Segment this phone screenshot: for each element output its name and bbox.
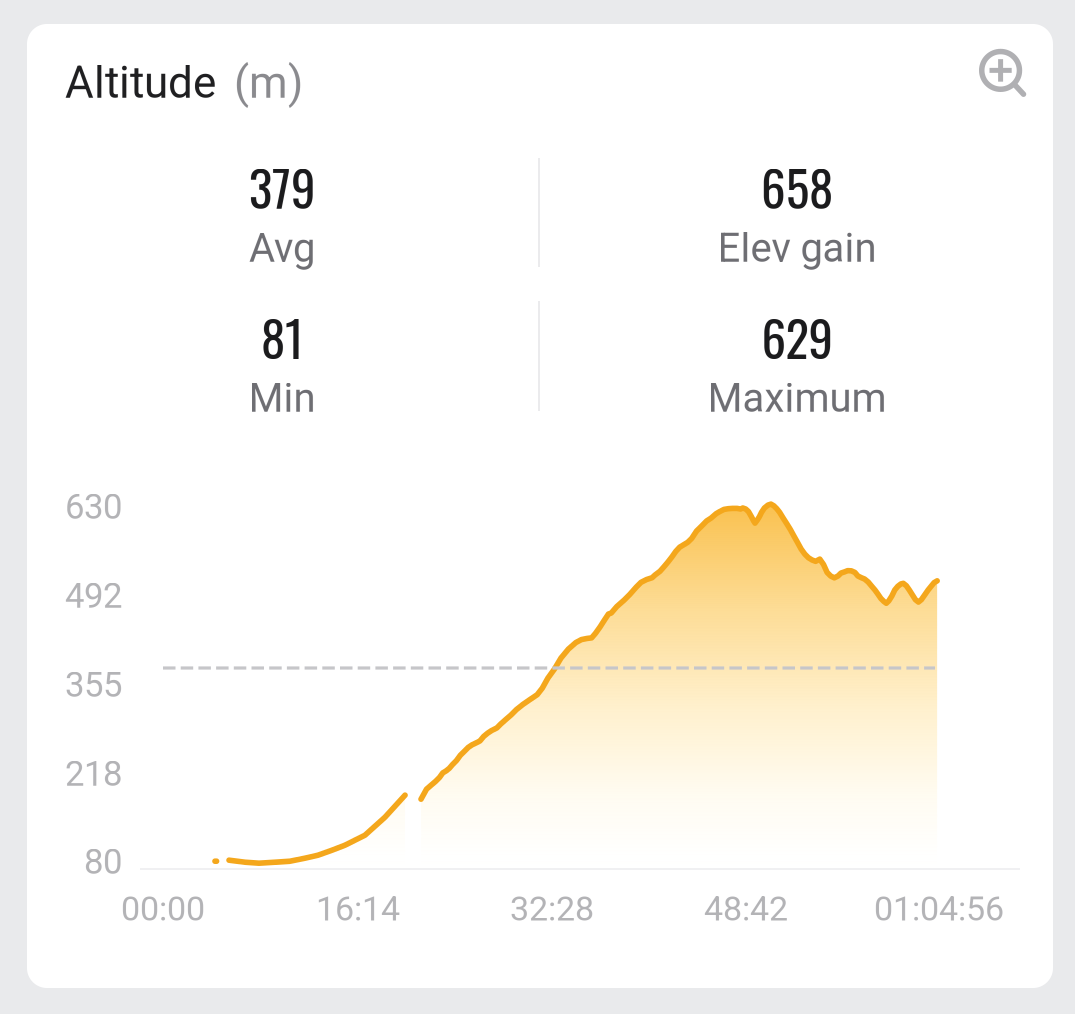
staticText: 01:04:56 — [874, 889, 1004, 929]
staticText: 630 — [65, 487, 122, 527]
staticText: (m) — [234, 57, 303, 109]
staticText: 218 — [65, 754, 122, 794]
staticText: 629 — [761, 301, 832, 373]
staticText: 379 — [249, 151, 315, 223]
staticText: Altitude — [65, 57, 216, 109]
staticText: Maximum — [707, 375, 886, 422]
staticText: Avg — [249, 225, 315, 271]
staticText: Elev gain — [717, 225, 876, 271]
staticText: 00:00 — [121, 889, 205, 929]
staticText: 48:42 — [704, 889, 788, 929]
staticText: 81 — [261, 301, 303, 373]
staticText: 355 — [65, 665, 122, 705]
staticText: 32:28 — [510, 889, 594, 929]
staticText: Min — [248, 375, 315, 422]
staticText: 658 — [761, 151, 833, 223]
button[interactable]: Zoom in — [978, 48, 1034, 104]
staticText: 492 — [65, 576, 122, 616]
staticText: 80 — [84, 842, 122, 882]
staticText: 16:14 — [316, 889, 400, 929]
